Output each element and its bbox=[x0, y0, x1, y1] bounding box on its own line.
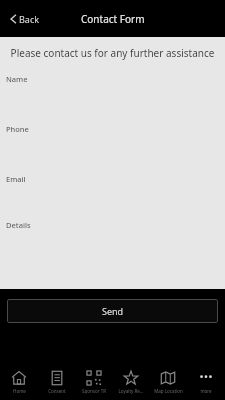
staticText: Loyalty Re... bbox=[118, 388, 144, 394]
staticText: Please contact us for any further assist… bbox=[6, 46, 219, 60]
button[interactable]: Email bbox=[0, 173, 225, 185]
button[interactable]: Sponsor bbox=[76, 367, 112, 397]
staticText: Back bbox=[19, 13, 40, 25]
staticText: Email bbox=[6, 174, 26, 184]
button[interactable]: Map Location bbox=[150, 367, 186, 397]
button[interactable]: Details bbox=[0, 219, 225, 231]
staticText: Name bbox=[6, 74, 28, 84]
button[interactable]: More bbox=[188, 367, 224, 397]
button[interactable]: Phone bbox=[0, 123, 225, 135]
button[interactable]: Back bbox=[6, 9, 44, 29]
staticText: Send bbox=[102, 305, 124, 317]
button[interactable]: Name bbox=[0, 73, 225, 85]
button[interactable]: Send bbox=[7, 299, 218, 323]
staticText: Details bbox=[6, 220, 31, 230]
staticText: Home bbox=[13, 388, 26, 394]
staticText: Consent bbox=[48, 388, 66, 394]
staticText: more bbox=[200, 388, 212, 394]
staticText: Contact Form bbox=[81, 12, 145, 26]
button[interactable]: Loyalty Rewards bbox=[113, 367, 149, 397]
staticText: Map Location bbox=[154, 388, 183, 394]
staticText: Phone bbox=[6, 124, 29, 134]
button[interactable]: Home bbox=[1, 367, 37, 397]
staticText: Sponsor TR bbox=[82, 388, 106, 394]
button[interactable]: Consent bbox=[39, 367, 75, 397]
